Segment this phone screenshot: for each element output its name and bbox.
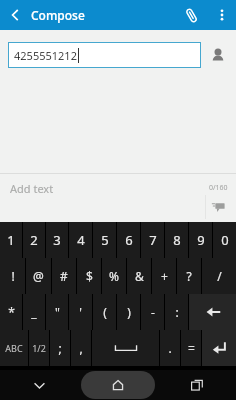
button[interactable]: / — [202, 258, 236, 294]
button[interactable]: More options — [208, 1, 236, 29]
button[interactable]: Enter — [202, 330, 236, 366]
staticText: # — [60, 268, 68, 284]
button[interactable]: ? — [177, 258, 201, 294]
staticText: + — [161, 268, 168, 284]
button[interactable]: Recent apps — [157, 370, 236, 400]
button[interactable]: & — [127, 258, 151, 294]
staticText: 9 — [197, 231, 205, 249]
button[interactable]: 2 — [23, 222, 45, 258]
button[interactable]: Send — [208, 195, 230, 217]
staticText: 0 — [221, 231, 229, 249]
button[interactable]: : — [165, 294, 188, 330]
staticText: _ — [31, 304, 37, 320]
staticText: 1 — [7, 231, 15, 249]
button[interactable]: 6 — [117, 222, 140, 258]
staticText: : — [175, 304, 179, 320]
button[interactable]: % — [102, 258, 126, 294]
staticText: 4255551212 — [14, 48, 77, 63]
staticText: & — [135, 268, 144, 284]
button[interactable]: 9 — [189, 222, 212, 258]
button[interactable]: _ — [23, 294, 45, 330]
button[interactable]: - — [141, 294, 164, 330]
button[interactable]: . — [160, 330, 180, 366]
staticText: ) — [127, 304, 131, 320]
button[interactable]: Space — [92, 330, 159, 366]
staticText: % — [109, 268, 119, 284]
button[interactable]: Hide keyboard — [0, 370, 78, 400]
staticText: ' — [79, 304, 82, 320]
button[interactable]: 3 — [46, 222, 68, 258]
button[interactable]: 1 — [0, 222, 22, 258]
button[interactable]: Add text — [0, 174, 236, 222]
button[interactable]: @ — [26, 258, 51, 294]
button[interactable]: Backspace — [189, 294, 236, 330]
staticText: , — [79, 340, 83, 356]
button[interactable]: ' — [69, 294, 92, 330]
staticText: Add text — [10, 181, 54, 196]
staticText: 3 — [53, 231, 61, 249]
staticText: ? — [186, 268, 192, 284]
staticText: / — [217, 268, 222, 284]
staticText: 2 — [30, 231, 38, 249]
staticText: . — [168, 340, 172, 356]
staticText: 6 — [125, 231, 133, 249]
button[interactable]: $ — [77, 258, 101, 294]
button[interactable]: ( — [93, 294, 116, 330]
staticText: ( — [103, 304, 107, 320]
button[interactable]: ABC — [0, 330, 28, 366]
button[interactable]: ; — [50, 330, 70, 366]
button[interactable]: 4 — [69, 222, 92, 258]
button[interactable]: 7 — [141, 222, 164, 258]
staticText: Compose — [31, 7, 85, 23]
staticText: 7 — [149, 231, 157, 249]
staticText: @ — [33, 268, 44, 284]
button[interactable]: 8 — [165, 222, 188, 258]
button[interactable]: " — [46, 294, 68, 330]
staticText: ABC — [5, 342, 23, 354]
button[interactable]: Home — [81, 371, 155, 399]
button[interactable]: 5 — [93, 222, 116, 258]
staticText: 8 — [173, 231, 181, 249]
button[interactable]: Back — [0, 0, 30, 30]
button[interactable]: Pick contact — [206, 43, 230, 67]
staticText: " — [55, 304, 60, 320]
button[interactable]: * — [0, 294, 22, 330]
staticText: = — [188, 340, 195, 356]
button[interactable]: ! — [0, 258, 25, 294]
button[interactable]: 0 — [213, 222, 236, 258]
staticText: 4 — [77, 231, 85, 249]
staticText: 0/160 — [209, 183, 228, 193]
button[interactable]: Attach — [177, 1, 205, 29]
staticText: $ — [86, 268, 93, 284]
button[interactable]: 4255551212 — [8, 42, 201, 68]
button[interactable]: # — [52, 258, 76, 294]
button[interactable]: ) — [117, 294, 140, 330]
button[interactable]: 1/2 — [29, 330, 49, 366]
button[interactable]: , — [71, 330, 91, 366]
staticText: 5 — [101, 231, 109, 249]
staticText: 1/2 — [32, 342, 46, 354]
staticText: ! — [11, 268, 15, 284]
staticText: * — [8, 304, 15, 320]
staticText: - — [151, 304, 155, 320]
button[interactable]: = — [181, 330, 201, 366]
button[interactable]: + — [152, 258, 176, 294]
staticText: ; — [58, 340, 62, 356]
